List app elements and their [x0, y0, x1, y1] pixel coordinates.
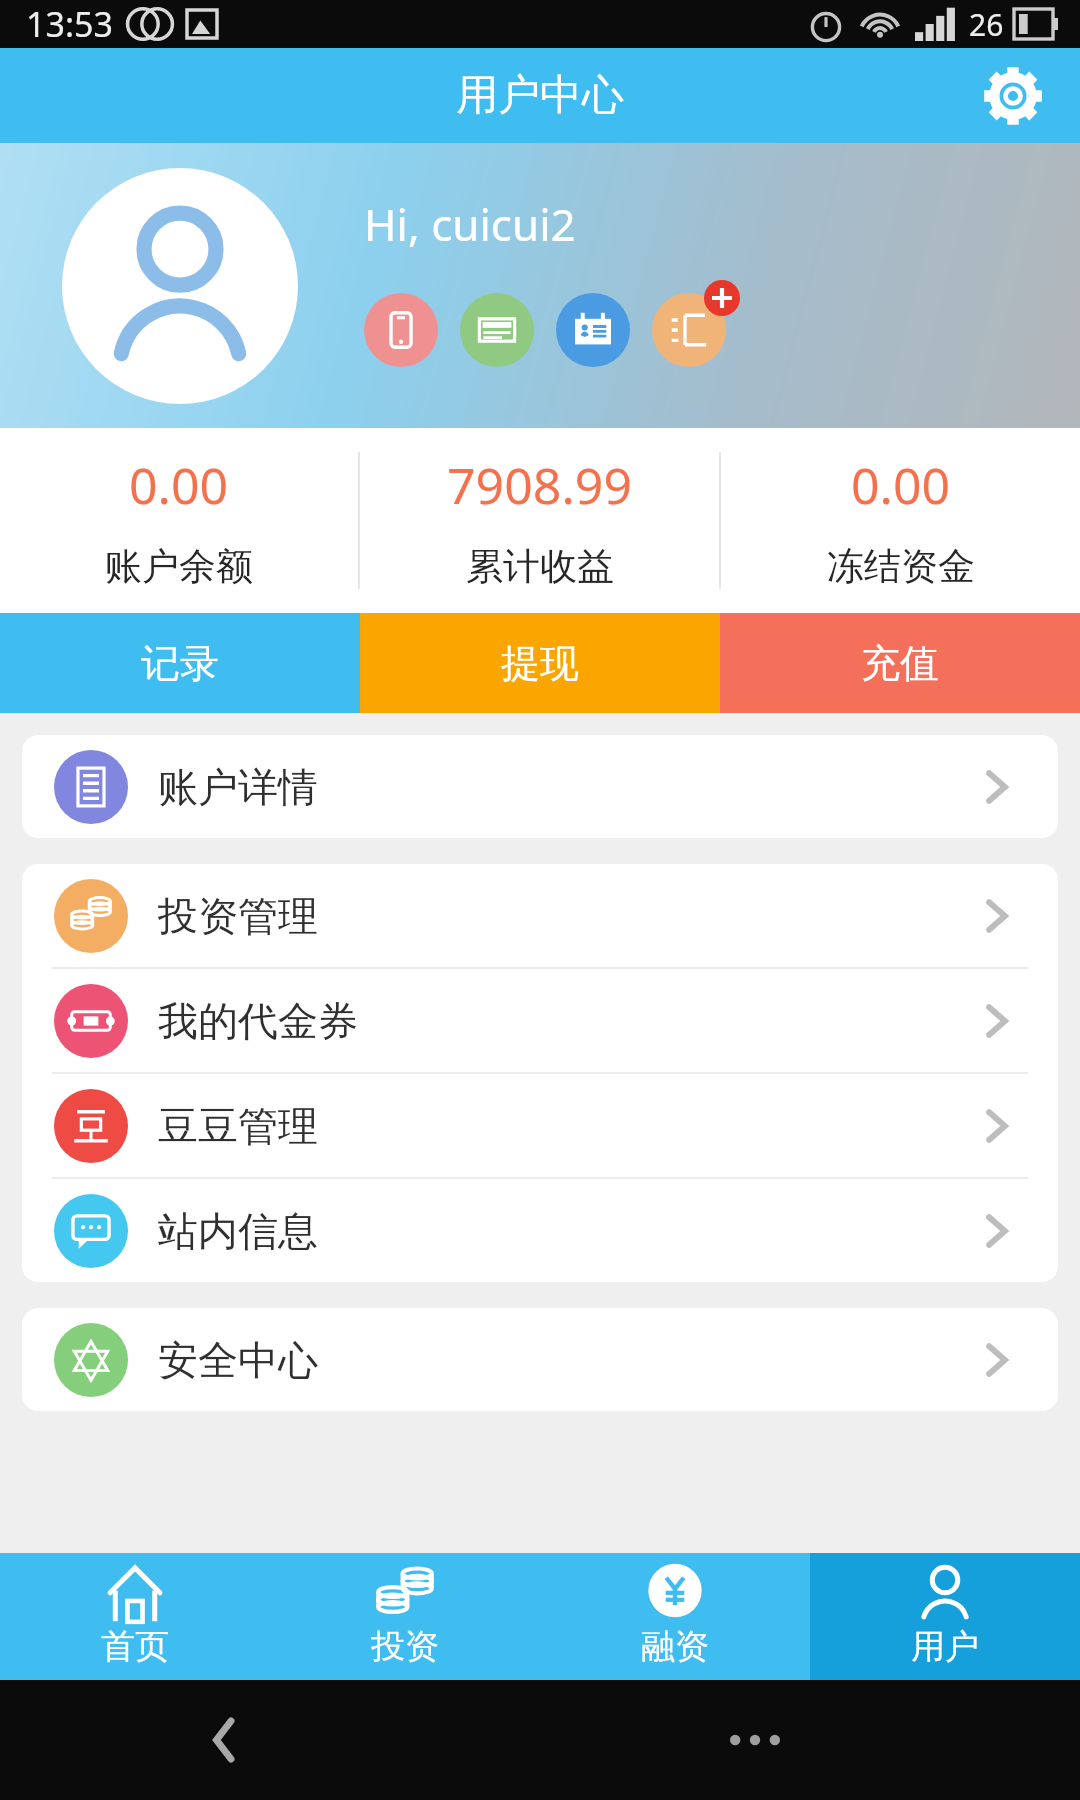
staticText: 投资 — [371, 1625, 439, 1668]
staticText: 0.00 — [129, 451, 229, 519]
staticText: 账户余额 — [105, 543, 253, 590]
staticText: 我的代金券 — [158, 996, 358, 1046]
button[interactable]: 0.00 — [721, 428, 1080, 613]
staticText: 累计收益 — [466, 543, 614, 590]
staticText: 投资管理 — [158, 891, 318, 941]
button[interactable]: 豆豆管理 — [22, 1074, 1058, 1177]
button[interactable]: 投资 — [270, 1553, 540, 1680]
staticText: 用户 — [911, 1625, 979, 1668]
staticText: 安全中心 — [158, 1335, 318, 1385]
staticText: 用户中心 — [456, 69, 624, 122]
button[interactable]: 0.00 — [0, 428, 358, 613]
button[interactable]: 融资 — [540, 1553, 810, 1680]
button[interactable]: Back — [190, 1705, 260, 1775]
button[interactable]: 记录 — [0, 613, 360, 713]
button[interactable]: 我的代金券 — [22, 969, 1058, 1072]
staticText: 7908.99 — [447, 451, 632, 519]
staticText: 26 — [969, 4, 1004, 45]
button[interactable]: Identity verification — [556, 293, 630, 367]
staticText: 首页 — [101, 1625, 169, 1668]
staticText: 账户详情 — [158, 762, 318, 812]
button[interactable]: Bank card — [460, 293, 534, 367]
button[interactable]: 用户 — [810, 1553, 1080, 1680]
staticText: 站内信息 — [158, 1206, 318, 1256]
button[interactable]: 安全中心 — [22, 1308, 1058, 1411]
button[interactable]: Recent apps — [720, 1705, 790, 1775]
button[interactable]: Settings — [976, 59, 1050, 133]
staticText: 充值 — [861, 639, 939, 688]
staticText: 记录 — [141, 639, 219, 688]
button[interactable]: 投资管理 — [22, 864, 1058, 967]
button[interactable]: Profile photo — [62, 168, 298, 404]
button[interactable]: 首页 — [0, 1553, 270, 1680]
staticText: 提现 — [501, 639, 579, 688]
button[interactable]: 充值 — [720, 613, 1080, 713]
staticText: 0.00 — [851, 451, 951, 519]
button[interactable]: 提现 — [360, 613, 720, 713]
staticText: 豆豆管理 — [158, 1101, 318, 1151]
staticText: 冻结资金 — [827, 543, 975, 590]
button[interactable]: Exchange — [652, 293, 726, 367]
staticText: 融资 — [641, 1625, 709, 1668]
button[interactable]: 账户详情 — [22, 735, 1058, 838]
button[interactable]: 7908.99 — [360, 428, 719, 613]
button[interactable]: 站内信息 — [22, 1179, 1058, 1282]
button[interactable]: Mobile verification — [364, 293, 438, 367]
staticText: 13:53 — [26, 1, 113, 47]
staticText: Hi, cuicui2 — [364, 194, 576, 254]
